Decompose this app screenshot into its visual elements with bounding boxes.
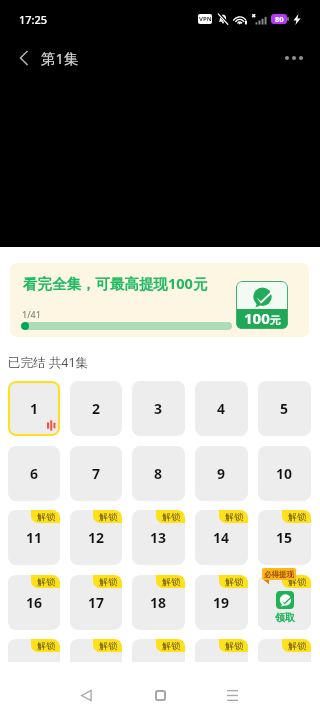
button[interactable]: 16 [8, 575, 60, 630]
staticText: 领取 [275, 611, 295, 624]
button[interactable]: Back [64, 673, 108, 715]
staticText: 16 [26, 593, 43, 612]
button[interactable]: 13 [132, 510, 185, 565]
staticText: 必得提现 [264, 570, 294, 579]
button[interactable]: 3 [132, 381, 185, 436]
staticText: 解锁 [225, 576, 243, 587]
button[interactable]: 24 [195, 639, 248, 662]
staticText: 解锁 [99, 511, 117, 522]
staticText: 解锁 [288, 576, 306, 587]
staticText: 解锁 [225, 511, 243, 522]
staticText: 解锁 [37, 576, 55, 587]
staticText: 6 [30, 464, 39, 483]
staticText: 解锁 [162, 511, 180, 522]
staticText: 4 [217, 399, 226, 418]
staticText: 17 [88, 593, 105, 612]
staticText: 19 [213, 593, 230, 612]
staticText: 7 [92, 464, 101, 483]
staticText: 3 [154, 399, 163, 418]
staticText: 12 [88, 528, 105, 547]
staticText: 解锁 [99, 576, 117, 587]
button[interactable]: 看完全集，可最高提现100元 [10, 263, 309, 337]
staticText: 15 [276, 528, 293, 547]
staticText: 解锁 [162, 640, 180, 651]
button[interactable]: 12 [70, 510, 122, 565]
button[interactable]: 1 [8, 381, 60, 436]
staticText: 解锁 [288, 511, 306, 522]
button[interactable]: 5 [258, 381, 311, 436]
staticText: 解锁 [37, 511, 55, 522]
button[interactable]: 4 [195, 381, 248, 436]
staticText: 13 [150, 528, 167, 547]
staticText: 8 [154, 464, 163, 483]
staticText: 1/41 [22, 308, 41, 320]
button[interactable]: 19 [195, 575, 248, 630]
button[interactable]: Recent apps [210, 673, 254, 715]
staticText: 看完全集，可最高提现100元 [23, 273, 208, 293]
button[interactable]: Back [2, 36, 46, 80]
staticText: 18 [150, 593, 167, 612]
staticText: 9 [217, 464, 226, 483]
button[interactable]: 23 [132, 639, 185, 662]
button[interactable]: More options [272, 36, 316, 80]
staticText: 17:25 [19, 12, 48, 27]
staticText: 5 [280, 399, 289, 418]
staticText: 第1集 [41, 48, 79, 68]
staticText: 100 [244, 308, 270, 328]
button[interactable]: 领取 [258, 575, 311, 630]
button[interactable]: 6 [8, 446, 60, 501]
staticText: 1 [30, 399, 39, 418]
button[interactable]: Home [138, 673, 182, 715]
button[interactable]: 2 [70, 381, 122, 436]
staticText: 11 [26, 528, 43, 547]
button[interactable]: 18 [132, 575, 185, 630]
staticText: 已完结 共41集 [8, 354, 89, 371]
button[interactable]: 9 [195, 446, 248, 501]
button[interactable]: 22 [70, 639, 122, 662]
button[interactable]: 21 [8, 639, 60, 662]
staticText: 解锁 [37, 640, 55, 651]
staticText: 元 [270, 314, 281, 327]
button[interactable]: 11 [8, 510, 60, 565]
staticText: 10 [276, 464, 293, 483]
button[interactable]: 7 [70, 446, 122, 501]
button[interactable]: 8 [132, 446, 185, 501]
button[interactable]: 25 [258, 639, 311, 662]
staticText: 解锁 [288, 640, 306, 651]
staticText: 2 [92, 399, 101, 418]
staticText: 80 [275, 14, 284, 24]
button[interactable]: 10 [258, 446, 311, 501]
button[interactable]: 15 [258, 510, 311, 565]
button[interactable]: 14 [195, 510, 248, 565]
staticText: 解锁 [162, 576, 180, 587]
staticText: 解锁 [99, 640, 117, 651]
staticText: VPN [199, 15, 212, 23]
staticText: 解锁 [225, 640, 243, 651]
button[interactable]: 17 [70, 575, 122, 630]
staticText: 14 [213, 528, 230, 547]
